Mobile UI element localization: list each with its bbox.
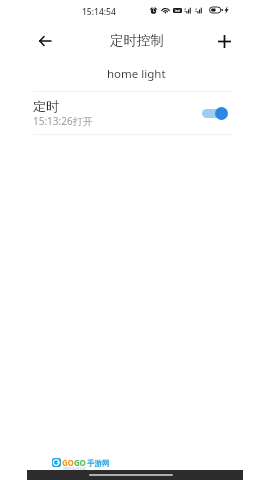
staticText: 定时 xyxy=(33,98,59,114)
staticText: home light xyxy=(107,66,166,82)
button[interactable]: 定时 xyxy=(27,92,243,134)
staticText: 手游网 xyxy=(87,459,110,468)
staticText: 定时控制 xyxy=(110,32,164,49)
button[interactable]: Add timer xyxy=(212,29,236,53)
staticText: 15:14:54 xyxy=(82,6,116,18)
button[interactable]: Timer switch, on xyxy=(202,106,228,120)
staticText: 15:13:26打开 xyxy=(33,114,93,128)
staticText: GO xyxy=(62,457,74,468)
staticText: WWW.GOGO.CN xyxy=(63,467,86,471)
button[interactable]: Back xyxy=(33,29,57,53)
staticText: GO xyxy=(74,457,86,468)
